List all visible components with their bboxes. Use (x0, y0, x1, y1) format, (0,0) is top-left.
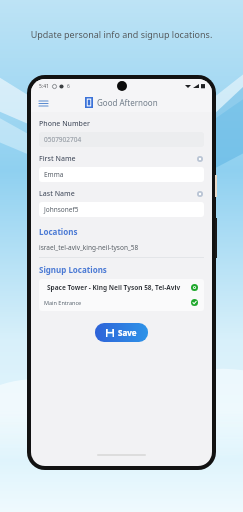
button[interactable]: Help for First Name (196, 155, 204, 163)
button[interactable]: Menu (36, 96, 50, 110)
staticText: Update personal info and signup location… (0, 28, 243, 40)
button[interactable]: Save (95, 323, 148, 342)
staticText: 6 (67, 83, 70, 90)
staticText: Johnsonef5 (44, 205, 79, 214)
button[interactable]: 0507902704 (39, 132, 204, 147)
button[interactable]: Visible (190, 283, 199, 292)
staticText: Last Name (39, 189, 196, 199)
staticText: First Name (39, 154, 196, 164)
button[interactable]: Space Tower - King Neil Tyson 58, Tel-Av… (44, 283, 199, 292)
staticText: israel_tel-aviv_king-neil-tyson_58 (39, 243, 139, 252)
staticText: Phone Number (39, 119, 90, 129)
staticText: Emma (44, 170, 64, 179)
staticText: Space Tower - King Neil Tyson 58, Tel-Av… (47, 283, 190, 292)
staticText: Save (118, 327, 137, 338)
staticText: Signup Locations (39, 264, 107, 275)
staticText: Good Afternoon (97, 97, 158, 108)
button[interactable]: Emma (39, 167, 204, 182)
staticText: Locations (39, 226, 78, 237)
button[interactable]: Confirmed (190, 298, 199, 307)
staticText: Main Entrance (44, 299, 190, 306)
staticText: 0507902704 (44, 135, 82, 144)
button[interactable]: Main Entrance (44, 298, 199, 307)
button[interactable]: Help for Last Name (196, 190, 204, 198)
staticText: 5:41 (39, 83, 49, 90)
button[interactable]: Johnsonef5 (39, 202, 204, 217)
